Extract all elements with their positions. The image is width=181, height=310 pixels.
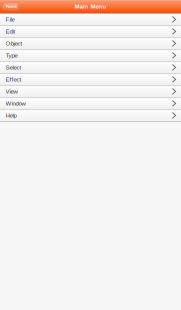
staticText: Object (5, 40, 22, 47)
button[interactable]: Select (0, 62, 181, 74)
staticText: Main Menu (74, 3, 106, 10)
staticText: Panels (6, 5, 17, 8)
button[interactable]: Effect (0, 74, 181, 86)
staticText: File (5, 16, 14, 23)
staticText: Select (5, 64, 21, 71)
button[interactable]: Panels (1, 3, 19, 10)
staticText: View (5, 88, 17, 95)
button[interactable]: Help (0, 110, 181, 122)
staticText: Type (5, 52, 17, 59)
staticText: Help (5, 112, 16, 119)
staticText: Edit (5, 28, 15, 35)
button[interactable]: Window (0, 98, 181, 110)
button[interactable]: Object (0, 38, 181, 50)
button[interactable]: Type (0, 50, 181, 62)
button[interactable]: Edit (0, 26, 181, 38)
staticText: Window (5, 100, 25, 107)
button[interactable]: View (0, 86, 181, 98)
button[interactable]: File (0, 14, 181, 26)
staticText: Effect (5, 76, 21, 83)
